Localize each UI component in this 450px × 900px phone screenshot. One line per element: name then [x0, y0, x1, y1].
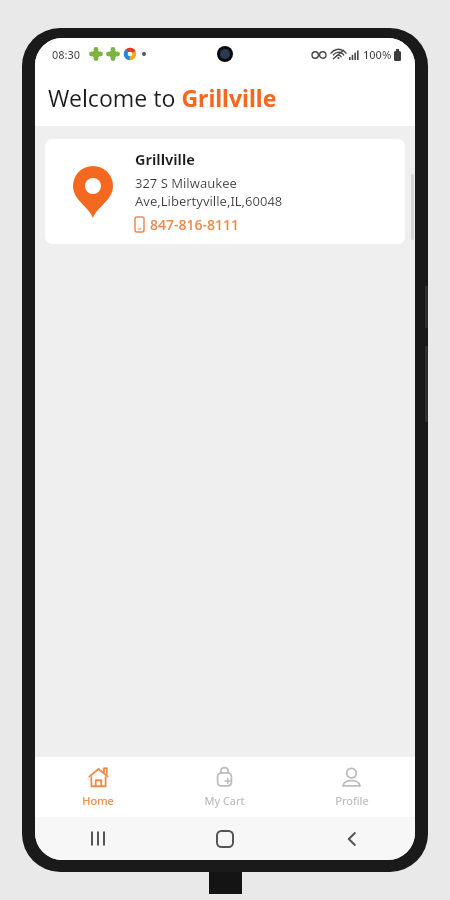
staticText: My Cart	[204, 793, 245, 808]
staticText: Grillville	[135, 149, 195, 169]
staticText: 847-816-8111	[150, 215, 240, 234]
button[interactable]: 847-816-8111	[135, 215, 240, 234]
staticText: 327 S Milwaukee	[135, 174, 237, 192]
button[interactable]: Home	[35, 757, 161, 817]
staticText: 08:30	[52, 47, 81, 62]
button[interactable]: Back	[288, 817, 415, 860]
staticText: Home	[82, 793, 114, 808]
staticText: Ave,Libertyville,IL,60048	[135, 192, 283, 210]
staticText: Welcome to Grillville	[48, 82, 277, 113]
staticText: Profile	[335, 793, 369, 808]
button[interactable]: Grillville	[45, 139, 405, 244]
button[interactable]: Profile	[288, 757, 415, 817]
button[interactable]: Recent apps	[35, 817, 161, 860]
button[interactable]: My Cart	[161, 757, 288, 817]
staticText: 100%	[363, 47, 392, 62]
button[interactable]: Home	[161, 817, 288, 860]
